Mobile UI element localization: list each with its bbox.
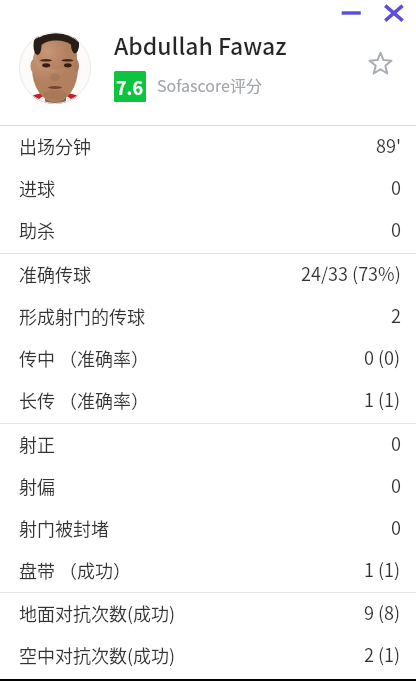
staticText: 0 [391, 430, 401, 456]
staticText: 0 [391, 514, 401, 540]
staticText: 传中 （准确率） [19, 345, 150, 371]
staticText: 射正 [19, 431, 55, 457]
button[interactable]: 地面对抗次数(成功) [0, 593, 416, 635]
staticText: 0 [391, 216, 401, 242]
button[interactable]: Close [374, 0, 410, 28]
button[interactable]: 传中 （准确率） [0, 338, 416, 380]
button[interactable]: 盘带 （成功） [0, 550, 416, 592]
button[interactable]: 准确传球 [0, 254, 416, 296]
staticText: 2 (1) [364, 641, 401, 667]
staticText: 9 (8) [364, 599, 401, 625]
button[interactable]: 射门被封堵 [0, 508, 416, 550]
button[interactable]: Minimize [330, 0, 372, 28]
staticText: 助杀 [19, 217, 55, 243]
staticText: 地面对抗次数(成功) [19, 600, 176, 626]
staticText: 2 [391, 302, 401, 328]
button[interactable]: Favorite [363, 46, 397, 80]
staticText: 0 [391, 472, 401, 498]
button[interactable]: 射正 [0, 424, 416, 466]
staticText: 空中对抗次数(成功) [19, 642, 176, 668]
staticText: 出场分钟 [19, 133, 91, 159]
staticText: 1 (1) [364, 386, 401, 412]
staticText: Abdullah Fawaz [114, 28, 287, 61]
staticText: 0 [391, 174, 401, 200]
button[interactable]: 长传 （准确率） [0, 380, 416, 422]
staticText: 长传 （准确率） [19, 387, 150, 413]
staticText: Sofascore评分 [157, 73, 262, 96]
staticText: 射偏 [19, 473, 55, 499]
button[interactable]: 助杀 [0, 210, 416, 252]
staticText: 89' [376, 132, 401, 158]
staticText: 形成射门的传球 [19, 303, 145, 329]
staticText: 0 (0) [364, 344, 401, 370]
staticText: 24/33 (73%) [301, 260, 401, 286]
staticText: 射门被封堵 [19, 515, 109, 541]
staticText: 7.6 [116, 74, 144, 100]
button[interactable]: 形成射门的传球 [0, 296, 416, 338]
button[interactable]: 进球 [0, 168, 416, 210]
staticText: 准确传球 [19, 261, 91, 287]
staticText: 1 (1) [364, 556, 401, 582]
staticText: 进球 [19, 175, 55, 201]
staticText: 盘带 （成功） [19, 557, 132, 583]
button[interactable]: 射偏 [0, 466, 416, 508]
button[interactable]: 出场分钟 [0, 126, 416, 168]
button[interactable]: 空中对抗次数(成功) [0, 635, 416, 677]
